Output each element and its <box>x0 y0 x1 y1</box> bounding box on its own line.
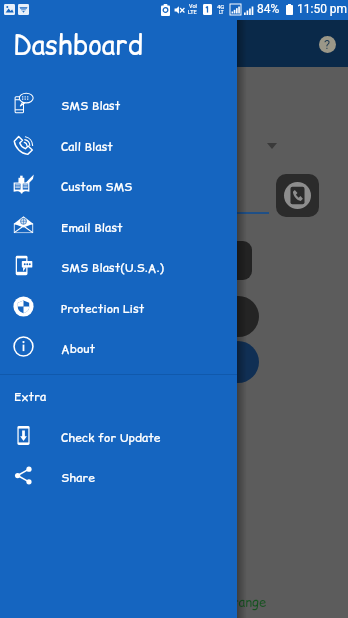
staticText: ? <box>324 37 331 52</box>
button[interactable]: Email Blast <box>0 207 237 247</box>
staticText: About <box>61 340 96 357</box>
staticText: Custom SMS <box>61 178 133 195</box>
staticText: 11:50 pm <box>297 2 348 16</box>
staticText: SMS Blast(U.S.A.) <box>61 259 165 276</box>
staticText: Call Blast <box>61 138 114 155</box>
button[interactable]: SMS Blast(U.S.A.) <box>0 247 237 287</box>
button[interactable]: Call Blast <box>0 126 237 166</box>
button[interactable]: About <box>0 328 237 368</box>
staticText: 84% <box>257 2 280 16</box>
button[interactable]: SMS Blast <box>0 85 237 125</box>
button[interactable]: Help <box>319 36 336 53</box>
staticText: Orange <box>222 593 267 611</box>
button[interactable]: Protection List <box>0 288 237 328</box>
button[interactable]: Call <box>276 174 319 217</box>
button[interactable]: Dashboard <box>0 21 237 68</box>
button[interactable]: Share <box>0 457 237 497</box>
button[interactable]: Custom SMS <box>0 166 237 206</box>
staticText: LT <box>219 10 224 15</box>
staticText: Share <box>61 469 95 486</box>
staticText: Vol <box>189 3 197 9</box>
staticText: SMS Blast <box>61 97 121 114</box>
button[interactable]: Check for Update <box>0 417 237 457</box>
staticText: Check for Update <box>61 429 161 446</box>
staticText: Protection List <box>61 300 145 317</box>
staticText: 4G <box>217 3 225 10</box>
staticText: Extra <box>14 388 47 405</box>
staticText: LTE <box>188 9 197 15</box>
staticText: Dashboard <box>13 27 143 63</box>
staticText: Email Blast <box>61 219 123 236</box>
